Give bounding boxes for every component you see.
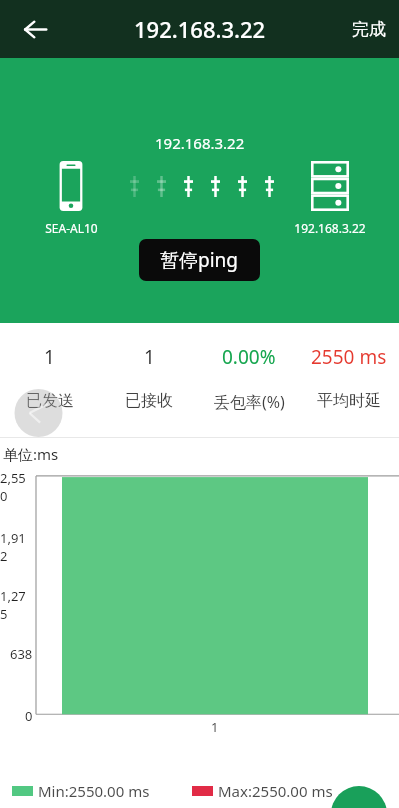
staticText: 丢包率(%) — [214, 391, 285, 413]
staticText: 已发送 — [26, 391, 74, 411]
button[interactable]: 0.00% — [199, 344, 299, 413]
staticText: 638 — [10, 645, 33, 663]
staticText: 平均时延 — [317, 391, 381, 411]
staticText: Max:2550.00 ms — [218, 781, 333, 801]
button[interactable]: 2550 ms — [299, 344, 399, 411]
staticText: 0.00% — [222, 344, 276, 370]
staticText: 1 — [144, 344, 155, 370]
button[interactable]: 暂停ping — [139, 239, 260, 281]
button[interactable]: Add — [331, 786, 387, 808]
staticText: 暂停ping — [160, 247, 239, 273]
staticText: 1,912 — [0, 529, 33, 565]
button[interactable]: 1 — [99, 344, 199, 411]
button[interactable]: Back — [12, 6, 58, 52]
staticText: 单位:ms — [3, 444, 59, 464]
staticText: 1,275 — [0, 587, 33, 623]
staticText: 192.168.3.22 — [134, 14, 266, 44]
staticText: 0 — [25, 707, 33, 725]
button[interactable]: 1 — [0, 344, 99, 411]
staticText: Min:2550.00 ms — [38, 781, 150, 801]
staticText: 1 — [44, 344, 55, 370]
staticText: 已接收 — [125, 391, 173, 411]
staticText: SEA-AL10 — [45, 220, 98, 236]
staticText: 完成 — [352, 19, 386, 40]
staticText: 192.168.3.22 — [155, 133, 245, 153]
staticText: 2,550 — [0, 469, 33, 505]
staticText: 1 — [211, 718, 219, 736]
staticText: 192.168.3.22 — [294, 220, 366, 236]
staticText: 2550 ms — [311, 344, 387, 370]
button[interactable]: 完成 — [339, 0, 399, 58]
